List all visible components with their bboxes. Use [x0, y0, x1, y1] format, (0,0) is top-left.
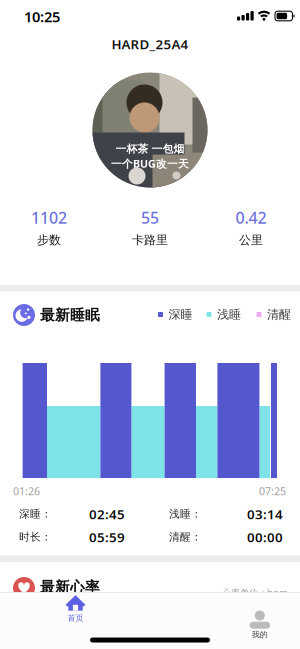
- staticText: 浅睡: [217, 307, 241, 322]
- staticText: 55: [141, 207, 159, 228]
- staticText: 07:25: [259, 484, 286, 498]
- staticText: 浅睡：: [169, 507, 202, 520]
- staticText: 最新睡眠: [40, 306, 100, 324]
- staticText: 一个BUG改一天: [111, 156, 189, 171]
- staticText: 步数: [37, 233, 61, 247]
- staticText: 心率单位：bpm: [222, 586, 288, 599]
- staticText: 公里: [239, 233, 263, 247]
- staticText: 深睡: [168, 307, 192, 322]
- staticText: 10:25: [24, 7, 60, 26]
- staticText: 时长：: [19, 530, 52, 543]
- staticText: 一杯茶 一包烟: [115, 142, 184, 155]
- staticText: 01:26: [13, 484, 40, 498]
- staticText: 深睡：: [19, 507, 52, 520]
- staticText: 清醒: [267, 307, 291, 322]
- staticText: 03:14: [247, 505, 283, 523]
- staticText: 清醒：: [169, 530, 202, 543]
- button[interactable]: 我的: [170, 592, 280, 637]
- staticText: 1102: [31, 207, 67, 228]
- staticText: 我的: [252, 630, 268, 639]
- staticText: 05:59: [89, 528, 125, 546]
- staticText: 卡路里: [132, 233, 168, 247]
- staticText: HARD_25A4: [111, 35, 188, 53]
- staticText: 首页: [67, 613, 83, 623]
- staticText: 0.42: [235, 207, 266, 228]
- staticText: 最新心率: [40, 578, 100, 596]
- staticText: 00:00: [247, 528, 283, 546]
- button[interactable]: 首页: [20, 592, 130, 637]
- staticText: 02:45: [89, 505, 125, 523]
